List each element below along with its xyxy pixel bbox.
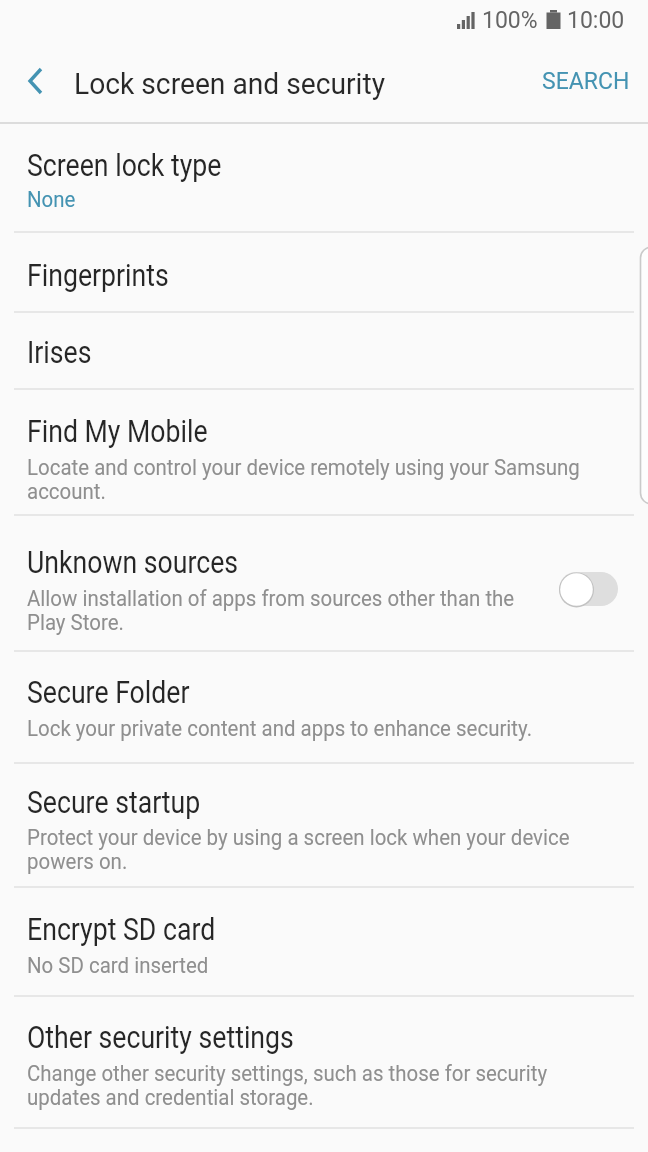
button[interactable]: Encrypt SD card — [0, 888, 648, 995]
staticText: SEARCH — [542, 68, 630, 95]
staticText: Protect your device by using a screen lo… — [27, 825, 570, 874]
staticText: Find My Mobile — [27, 413, 208, 449]
staticText: Fingerprints — [27, 257, 169, 293]
staticText: Allow installation of apps from sources … — [27, 586, 514, 635]
staticText: None — [27, 187, 76, 213]
staticText: Secure startup — [27, 784, 201, 820]
button[interactable]: Screen lock type — [0, 124, 648, 231]
button[interactable]: Find My Mobile — [0, 390, 648, 514]
staticText: No SD card inserted — [27, 953, 209, 979]
staticText: Encrypt SD card — [27, 911, 215, 947]
staticText: Other security settings — [27, 1019, 294, 1055]
staticText: 10:00 — [567, 7, 625, 34]
button[interactable]: Irises — [0, 313, 648, 388]
staticText: 100% — [482, 7, 538, 34]
staticText: Change other security settings, such as … — [27, 1061, 548, 1110]
staticText: Screen lock type — [27, 147, 222, 183]
staticText: Lock your private content and apps to en… — [27, 716, 533, 742]
staticText: Unknown sources — [27, 544, 239, 580]
button[interactable] — [559, 572, 618, 606]
button[interactable]: SEARCH — [542, 68, 630, 95]
staticText: Secure Folder — [27, 674, 189, 710]
button[interactable]: Fingerprints — [0, 233, 648, 311]
button[interactable] — [27, 67, 47, 97]
button[interactable]: Secure Folder — [0, 652, 648, 762]
button[interactable]: Other security settings — [0, 997, 648, 1127]
staticText: Locate and control your device remotely … — [27, 455, 580, 504]
button[interactable]: Unknown sources — [0, 516, 648, 650]
staticText: Lock screen and security — [74, 66, 385, 101]
staticText: Irises — [27, 334, 91, 370]
button[interactable]: Secure startup — [0, 764, 648, 886]
